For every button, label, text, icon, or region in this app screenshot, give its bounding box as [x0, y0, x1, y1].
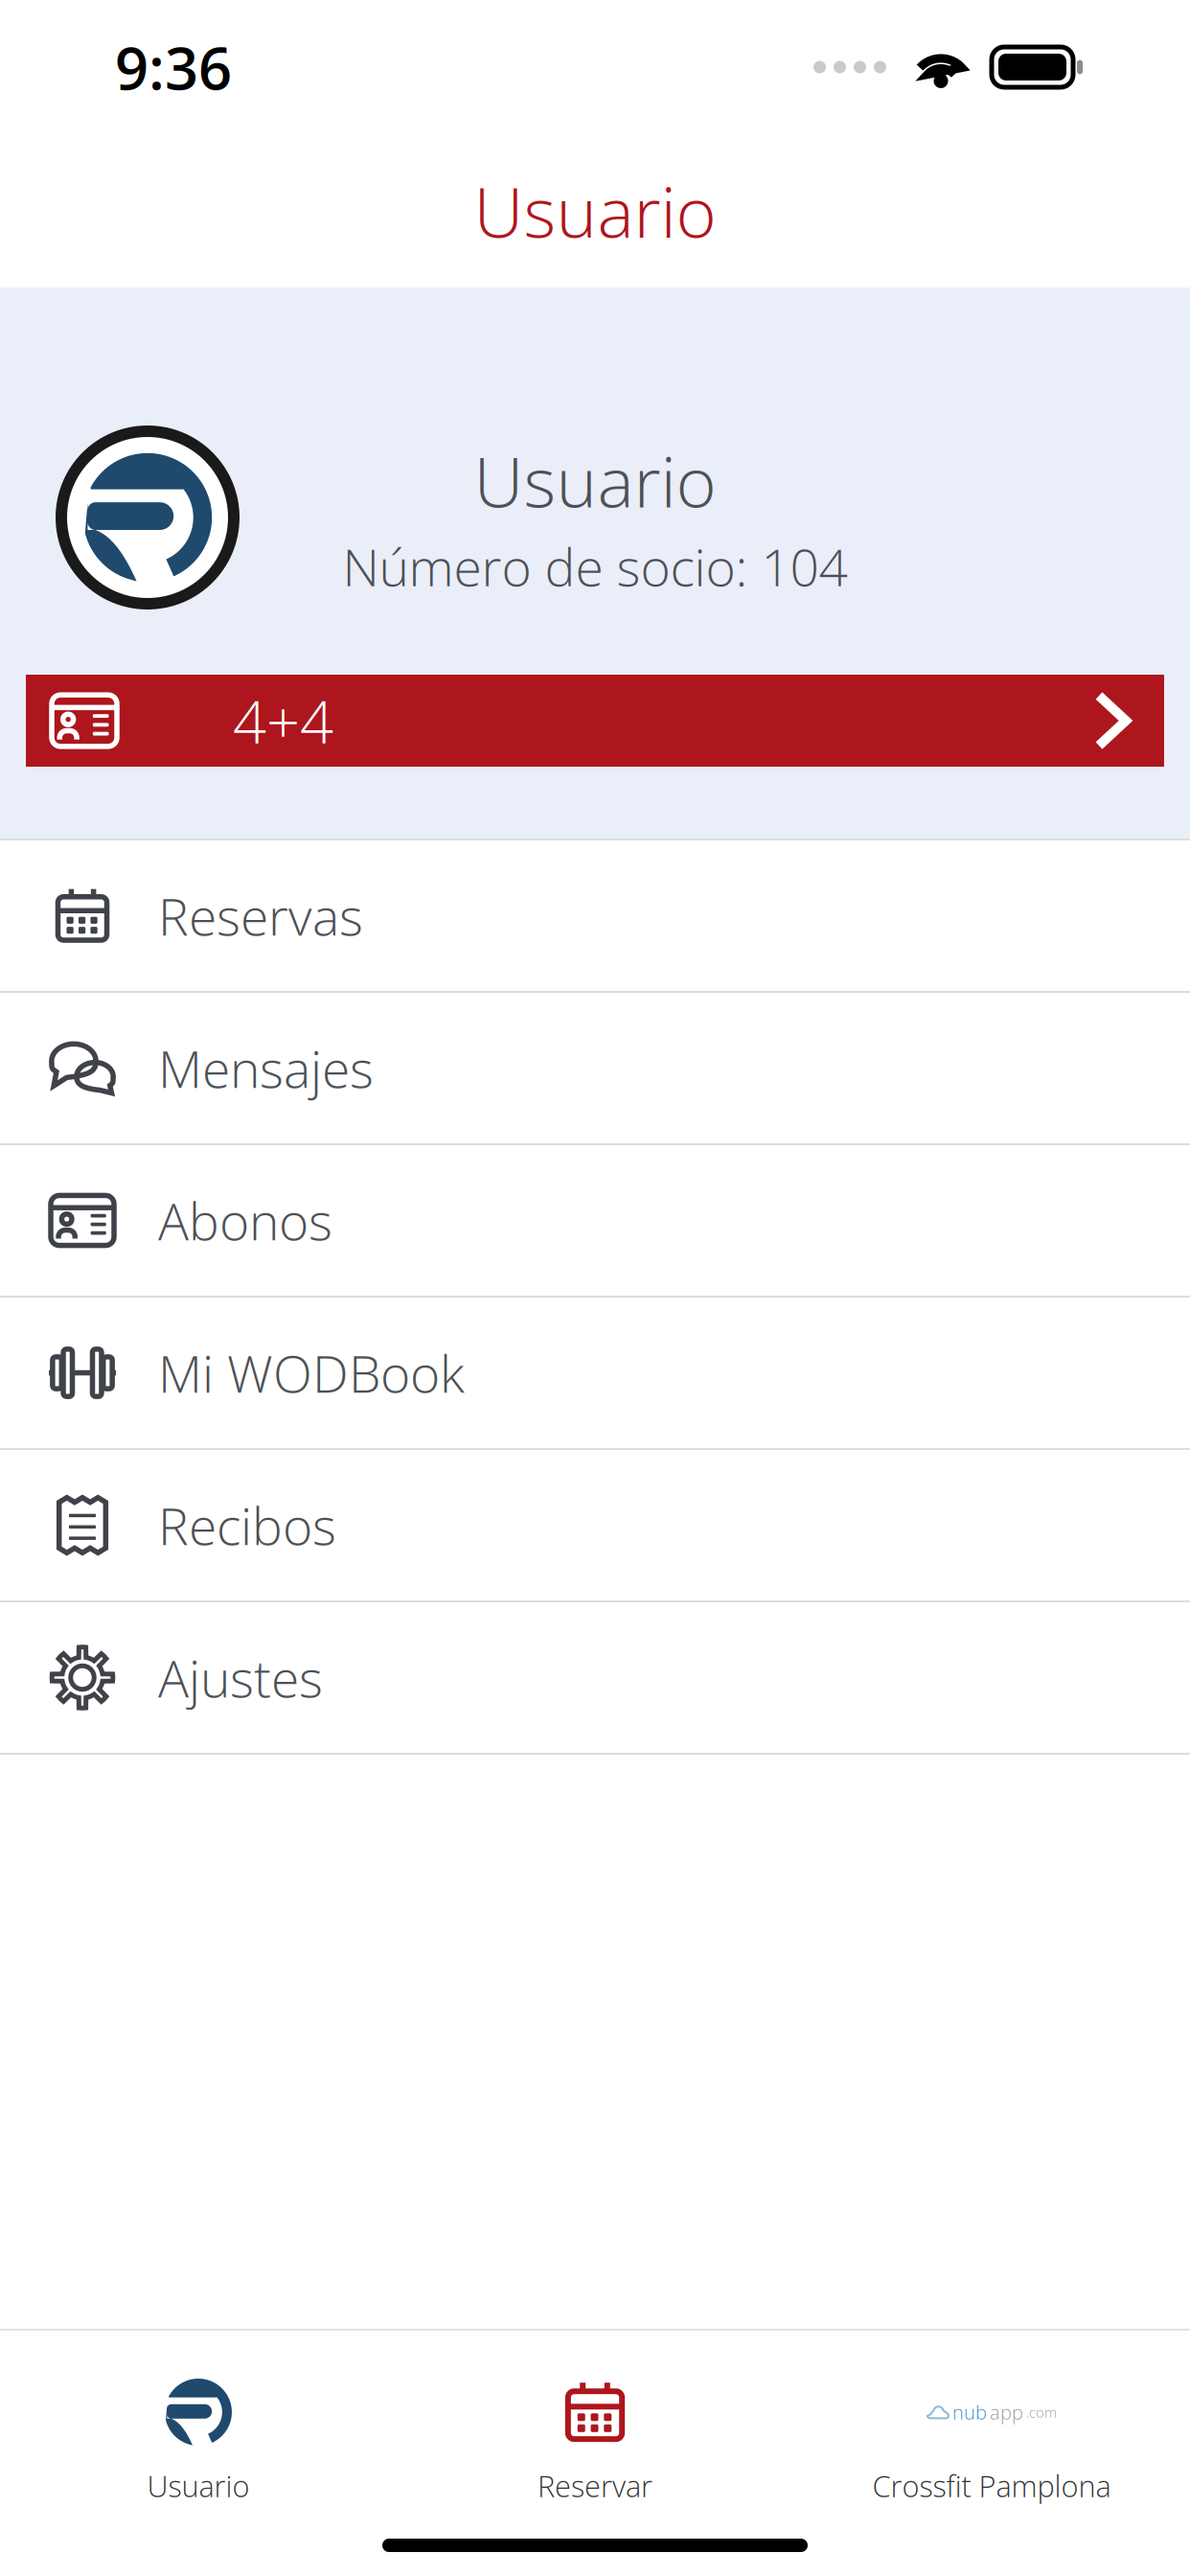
staticText: Recibos	[158, 1490, 336, 1560]
button[interactable]: 4+4	[26, 675, 1164, 767]
staticText: Reservas	[158, 881, 363, 950]
button[interactable]: Mi WODBook	[0, 1298, 1190, 1450]
button[interactable]: Abonos	[0, 1145, 1190, 1298]
staticText: Usuario	[147, 2466, 250, 2506]
staticText: nub	[952, 2399, 987, 2425]
staticText: Reservar	[538, 2466, 652, 2506]
button[interactable]: Ajustes	[0, 1602, 1190, 1755]
staticText: Crossfit Pamplona	[872, 2466, 1111, 2506]
staticText: Mensajes	[158, 1033, 374, 1103]
staticText: Usuario	[474, 434, 716, 528]
button[interactable]: Recibos	[0, 1450, 1190, 1602]
button[interactable]: Mensajes	[0, 993, 1190, 1145]
staticText: Mi WODBook	[158, 1338, 465, 1408]
staticText: Número de socio: 104	[343, 532, 847, 601]
staticText: Ajustes	[158, 1643, 323, 1712]
button[interactable]: Reservas	[0, 840, 1190, 993]
staticText: Usuario	[474, 164, 716, 258]
staticText: 9:36	[115, 27, 232, 107]
staticText: app	[990, 2399, 1023, 2425]
button[interactable]: nub	[793, 2331, 1190, 2520]
button[interactable]: Usuario	[0, 2331, 397, 2520]
button[interactable]: Reservar	[397, 2331, 793, 2520]
staticText: 4+4	[233, 681, 333, 761]
staticText: .com	[1026, 2403, 1057, 2422]
staticText: Abonos	[158, 1186, 332, 1255]
